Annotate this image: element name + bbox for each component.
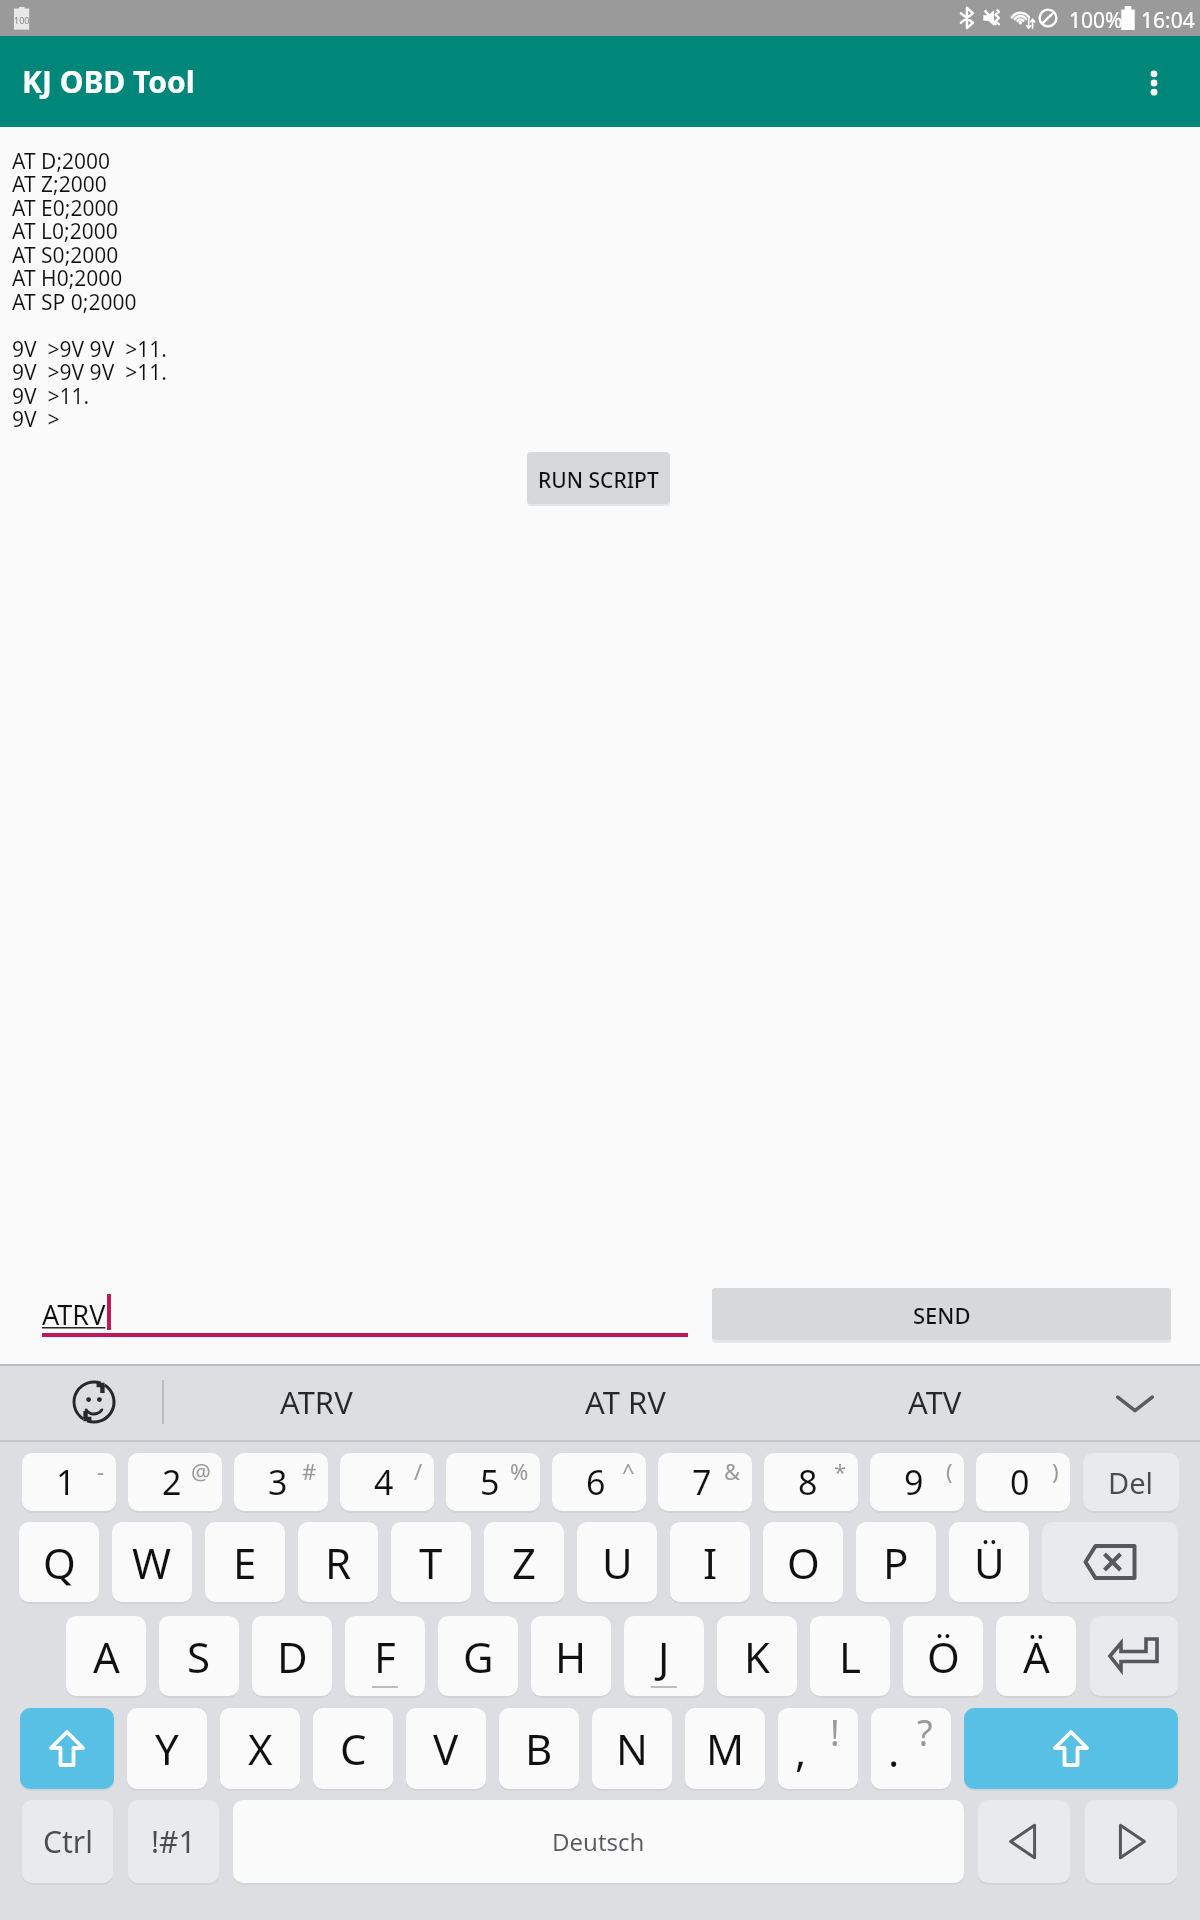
button[interactable]: F [345, 1616, 425, 1696]
staticText: Ctrl [43, 1821, 93, 1862]
button[interactable]: R [298, 1522, 378, 1602]
staticText: AT D;2000 [12, 147, 111, 176]
button[interactable]: AT RV [485, 1364, 765, 1440]
button[interactable]: Z [484, 1522, 564, 1602]
staticText: 2 [162, 1459, 182, 1505]
button[interactable]: B [499, 1708, 579, 1789]
staticText: 3 [268, 1459, 288, 1505]
button[interactable]: Left [978, 1800, 1070, 1883]
staticText: 9V >11. [12, 382, 90, 411]
button[interactable]: 4 [340, 1453, 434, 1511]
button[interactable]: S [159, 1616, 239, 1696]
staticText: AT H0;2000 [12, 264, 123, 293]
button[interactable]: 1 [22, 1453, 116, 1511]
staticText: 9V >9V 9V >11. [12, 335, 167, 364]
button[interactable]: I [670, 1522, 750, 1602]
staticText: ? [917, 1708, 933, 1757]
button[interactable]: Shift [964, 1708, 1178, 1789]
button[interactable]: ATV [795, 1364, 1075, 1440]
button[interactable]: RUN SCRIPT [527, 452, 670, 504]
button[interactable]: 2 [128, 1453, 222, 1511]
staticText: ATV [908, 1381, 962, 1423]
staticText: J [658, 1628, 670, 1685]
staticText: Ö [927, 1628, 960, 1685]
staticText: AT Z;2000 [12, 170, 107, 199]
button[interactable]: Ctrl [22, 1800, 113, 1883]
button[interactable]: O [763, 1522, 843, 1602]
staticText: Del [1108, 1463, 1154, 1502]
button[interactable]: 5 [446, 1453, 540, 1511]
staticText: Ä [1023, 1628, 1050, 1685]
button[interactable]: More options [1120, 36, 1200, 127]
button[interactable]: G [438, 1616, 518, 1696]
staticText: F [374, 1628, 396, 1685]
staticText: 1 [56, 1459, 76, 1505]
button[interactable]: M [685, 1708, 765, 1789]
staticText: Ü [974, 1534, 1005, 1591]
staticText: C [340, 1720, 367, 1777]
button[interactable]: Backspace [1042, 1522, 1178, 1602]
button[interactable]: !#1 [128, 1800, 219, 1883]
button[interactable]: J [624, 1616, 704, 1696]
button[interactable]: V [406, 1708, 486, 1789]
button[interactable]: Ä [996, 1616, 1076, 1696]
button[interactable]: H [531, 1616, 611, 1696]
staticText: 4 [374, 1459, 394, 1505]
staticText: N [616, 1720, 648, 1777]
staticText: AT SP 0;2000 [12, 288, 137, 317]
button[interactable]: 6 [552, 1453, 646, 1511]
button[interactable]: . [871, 1708, 951, 1789]
button[interactable]: X [220, 1708, 300, 1789]
button[interactable]: W [112, 1522, 192, 1602]
button[interactable]: Y [127, 1708, 207, 1789]
button[interactable]: L [810, 1616, 890, 1696]
staticText: Z [512, 1534, 537, 1591]
staticText: 9 [904, 1459, 924, 1505]
button[interactable]: Ü [949, 1522, 1029, 1602]
button[interactable]: Command input [42, 1288, 688, 1340]
staticText: 9V >9V 9V >11. [12, 358, 167, 387]
button[interactable]: ATRV [176, 1364, 456, 1440]
button[interactable]: N [592, 1708, 672, 1789]
staticText: A [93, 1628, 120, 1685]
staticText: K [744, 1628, 770, 1685]
staticText: O [787, 1534, 820, 1591]
button[interactable]: Deutsch [233, 1800, 964, 1883]
button[interactable]: Emoji [48, 1364, 140, 1440]
button[interactable]: Del [1083, 1453, 1179, 1511]
staticText: D [277, 1628, 308, 1685]
staticText: AT E0;2000 [12, 194, 119, 223]
button[interactable]: K [717, 1616, 797, 1696]
button[interactable]: P [856, 1522, 936, 1602]
button[interactable]: 3 [234, 1453, 328, 1511]
button[interactable]: 9 [870, 1453, 964, 1511]
button[interactable]: T [391, 1522, 471, 1602]
staticText: / [414, 1456, 423, 1486]
button[interactable]: Right [1085, 1800, 1177, 1883]
staticText: AT L0;2000 [12, 217, 118, 246]
button[interactable]: 7 [658, 1453, 752, 1511]
button[interactable]: 8 [764, 1453, 858, 1511]
staticText: 100 [14, 14, 30, 26]
button[interactable]: SEND [712, 1288, 1171, 1340]
button[interactable]: Ö [903, 1616, 983, 1696]
button[interactable]: E [205, 1522, 285, 1602]
staticText: RUN SCRIPT [538, 466, 659, 495]
staticText: KJ OBD Tool [22, 61, 195, 102]
button[interactable]: A [66, 1616, 146, 1696]
staticText: !#1 [151, 1821, 196, 1862]
button[interactable]: D [252, 1616, 332, 1696]
staticText: 16:04 [1141, 6, 1195, 35]
button[interactable]: C [313, 1708, 393, 1789]
button[interactable]: Enter [1090, 1616, 1178, 1696]
button[interactable]: 0 [976, 1453, 1070, 1511]
button[interactable]: Expand [1090, 1364, 1180, 1440]
staticText: B [525, 1720, 553, 1777]
staticText: % [510, 1456, 529, 1486]
button[interactable]: Shift [20, 1708, 114, 1789]
staticText: ATRV [280, 1381, 353, 1423]
staticText: , [795, 1722, 807, 1779]
button[interactable]: U [577, 1522, 657, 1602]
button[interactable]: , [778, 1708, 858, 1789]
button[interactable]: Q [19, 1522, 99, 1602]
